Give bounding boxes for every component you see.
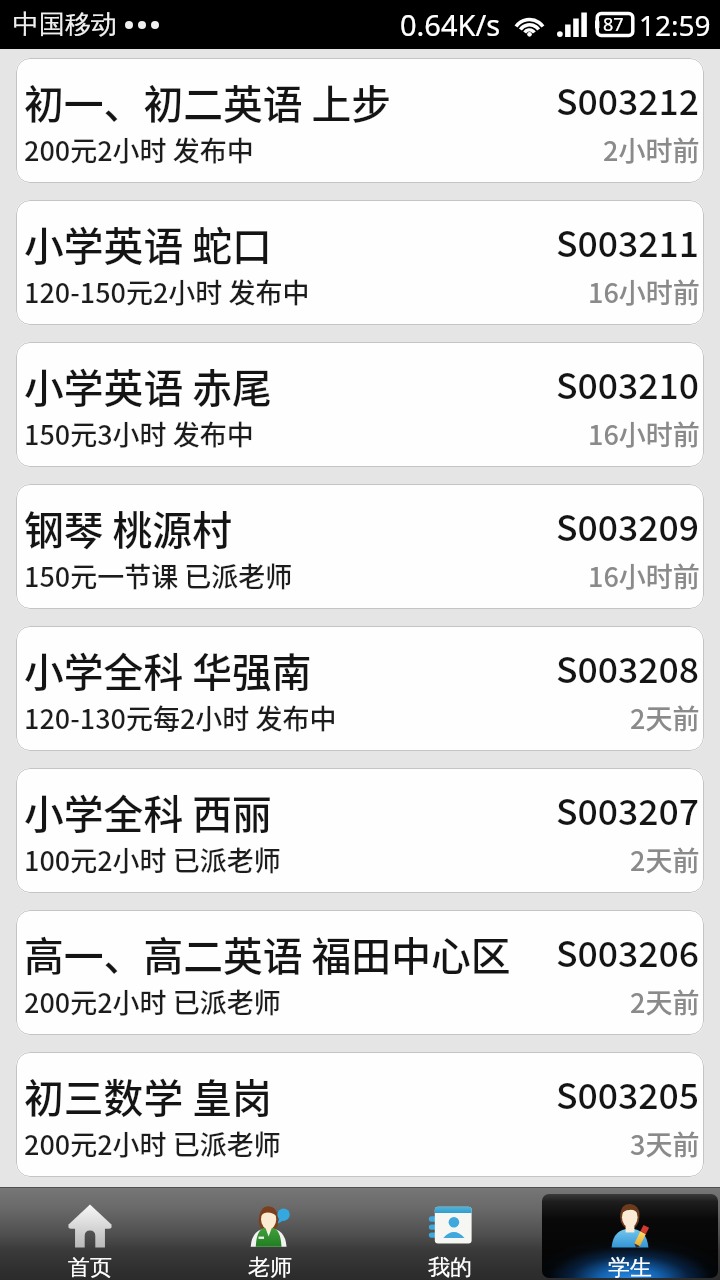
staticText: S003208 [556, 642, 699, 693]
staticText: 200元2小时 已派老师 [24, 982, 281, 1021]
button[interactable]: 钢琴 桃源村 S003209 [16, 484, 704, 609]
staticText: 小学英语 赤尾 [24, 357, 272, 415]
button[interactable]: 初一、初二英语 上步 S003212 [16, 58, 704, 183]
staticText: 120-150元2小时 发布中 [24, 272, 310, 311]
button[interactable]: 小学英语 赤尾 S003210 [16, 342, 704, 467]
button[interactable]: 我的 [362, 1194, 538, 1278]
staticText: 2天前 [630, 698, 700, 737]
staticText: S003205 [556, 1068, 699, 1119]
staticText: 初三数学 皇岗 [24, 1067, 272, 1125]
staticText: 150元3小时 发布中 [24, 414, 254, 453]
staticText: 老师 [248, 1254, 292, 1278]
staticText: 中国移动 [13, 8, 117, 41]
staticText: S003206 [556, 926, 699, 977]
button[interactable]: 初三数学 皇岗 S003205 [16, 1052, 704, 1177]
staticText: S003210 [556, 358, 699, 409]
staticText: 0.64K/s [400, 5, 501, 44]
staticText: S003212 [556, 74, 699, 125]
button[interactable]: 首页 [2, 1194, 178, 1278]
button[interactable]: 小学英语 蛇口 S003211 [16, 200, 704, 325]
button[interactable]: 老师 [182, 1194, 358, 1278]
staticText: 初一、初二英语 上步 [24, 73, 392, 131]
staticText: 首页 [68, 1254, 112, 1278]
staticText: 小学全科 西丽 [24, 783, 272, 841]
staticText: 200元2小时 已派老师 [24, 1124, 281, 1163]
staticText: S003211 [556, 216, 699, 267]
button[interactable]: 学生 [542, 1194, 718, 1278]
staticText: 钢琴 桃源村 [24, 499, 232, 557]
staticText: 100元2小时 已派老师 [24, 840, 281, 879]
staticText: 3天前 [630, 1124, 700, 1163]
staticText: 150元一节课 已派老师 [24, 556, 293, 595]
staticText: 2小时前 [603, 130, 700, 169]
staticText: 学生 [608, 1254, 652, 1278]
staticText: 16小时前 [588, 414, 700, 453]
staticText: 16小时前 [588, 556, 700, 595]
staticText: 2天前 [630, 840, 700, 879]
staticText: 我的 [428, 1254, 472, 1278]
staticText: S003209 [556, 500, 699, 551]
staticText: 2天前 [630, 982, 700, 1021]
button[interactable]: 高一、高二英语 福田中心区 S003206 [16, 910, 704, 1035]
staticText: S003207 [556, 784, 699, 835]
button[interactable]: 小学全科 华强南 S003208 [16, 626, 704, 751]
staticText: 120-130元每2小时 发布中 [24, 698, 337, 737]
staticText: 小学英语 蛇口 [24, 215, 272, 273]
staticText: 12:59 [639, 6, 711, 44]
staticText: 小学全科 华强南 [24, 641, 312, 699]
staticText: 200元2小时 发布中 [24, 130, 254, 169]
staticText: 16小时前 [588, 272, 700, 311]
staticText: 87 [603, 12, 624, 37]
button[interactable]: 小学全科 西丽 S003207 [16, 768, 704, 893]
staticText: 高一、高二英语 福田中心区 [24, 925, 511, 983]
